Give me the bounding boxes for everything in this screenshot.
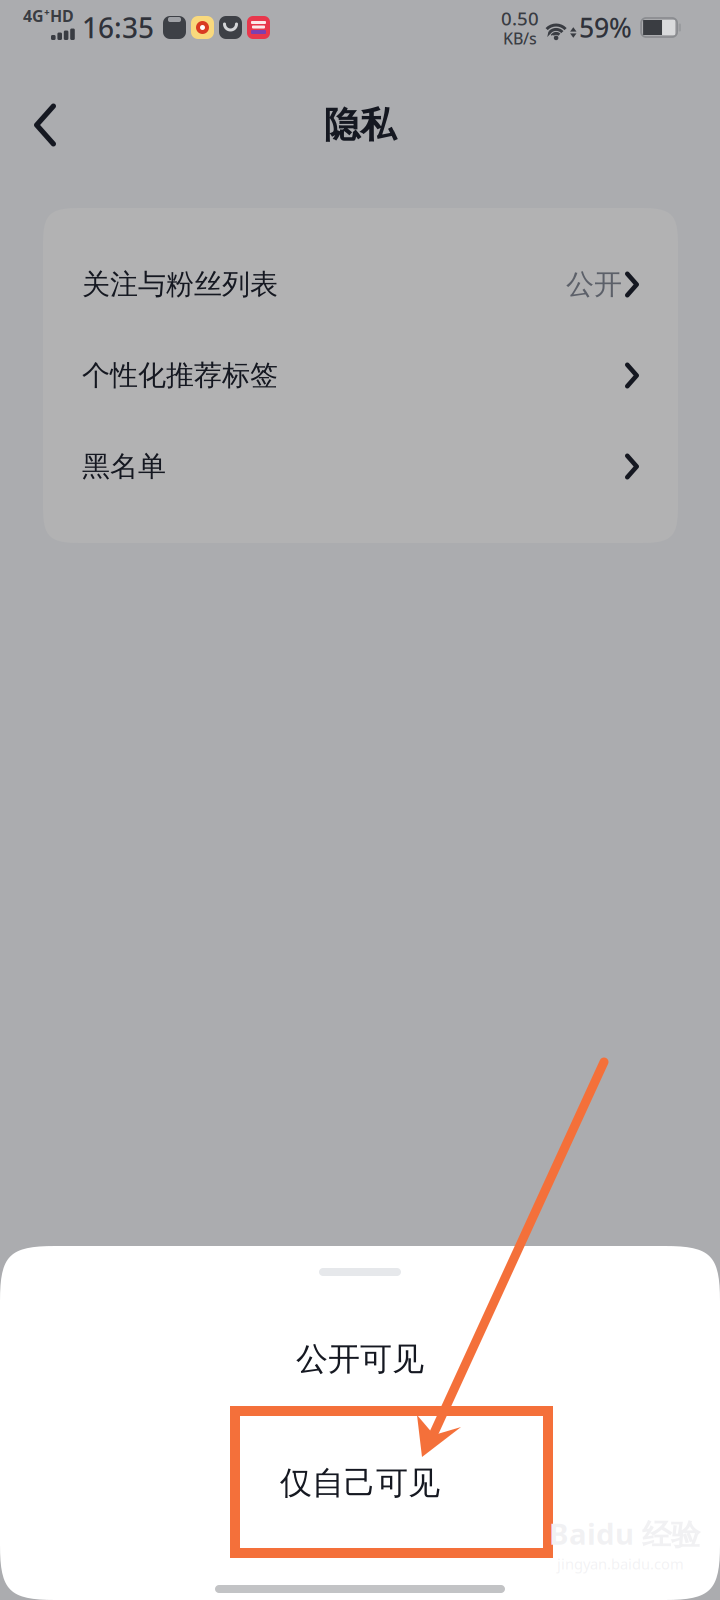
staticText: 个性化推荐标签 xyxy=(82,358,278,393)
staticText: 隐私 xyxy=(324,103,396,147)
button[interactable]: 仅自己可见 xyxy=(0,1421,720,1545)
staticText: Baidu 经验 xyxy=(549,1514,700,1553)
staticText: KB/s xyxy=(503,28,537,49)
staticText: 关注与粉丝列表 xyxy=(82,267,278,302)
button[interactable]: 个性化推荐标签 xyxy=(43,330,678,421)
staticText: 16:35 xyxy=(82,9,154,46)
staticText: 公开 xyxy=(566,267,622,302)
staticText: 黑名单 xyxy=(82,449,166,484)
staticText: 仅自己可见 xyxy=(280,1463,440,1503)
staticText: 59% xyxy=(579,10,632,45)
staticText: 4G⁺HD xyxy=(23,5,74,26)
button[interactable]: 黑名单 xyxy=(43,421,678,512)
button[interactable]: 关注与粉丝列表 xyxy=(43,239,678,330)
staticText: jingyan.baidu.com xyxy=(557,1554,684,1574)
staticText: 公开可见 xyxy=(296,1339,424,1379)
button[interactable]: 公开可见 xyxy=(0,1297,720,1421)
staticText: 0.50 xyxy=(501,6,539,31)
button[interactable]: Back xyxy=(0,87,80,162)
